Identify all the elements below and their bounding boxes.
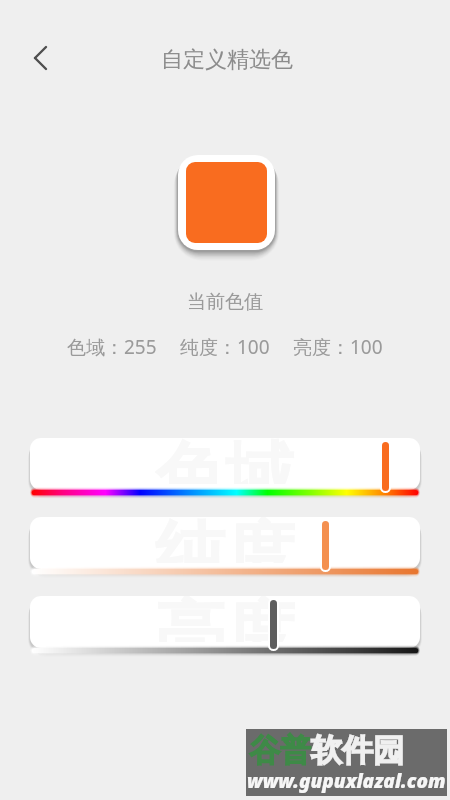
staticText: www.gupuxlazal.com xyxy=(247,768,446,794)
button[interactable]: 色域 xyxy=(30,438,420,500)
staticText: 色域 xyxy=(155,438,295,484)
button[interactable]: 纯度 xyxy=(30,517,420,579)
staticText: 色域：255 xyxy=(67,334,157,360)
staticText: 亮度：100 xyxy=(293,334,383,360)
staticText: 当前色值 xyxy=(187,290,263,314)
staticText: 谷普 xyxy=(249,731,311,770)
button[interactable]: 亮度 xyxy=(30,596,420,658)
staticText: 纯度 xyxy=(155,517,295,563)
staticText: 亮度 xyxy=(155,596,295,642)
staticText: 自定义精选色 xyxy=(161,46,293,74)
staticText: 纯度：100 xyxy=(180,334,270,360)
button[interactable]: Back xyxy=(19,36,63,80)
staticText: 软件园 xyxy=(311,731,404,770)
